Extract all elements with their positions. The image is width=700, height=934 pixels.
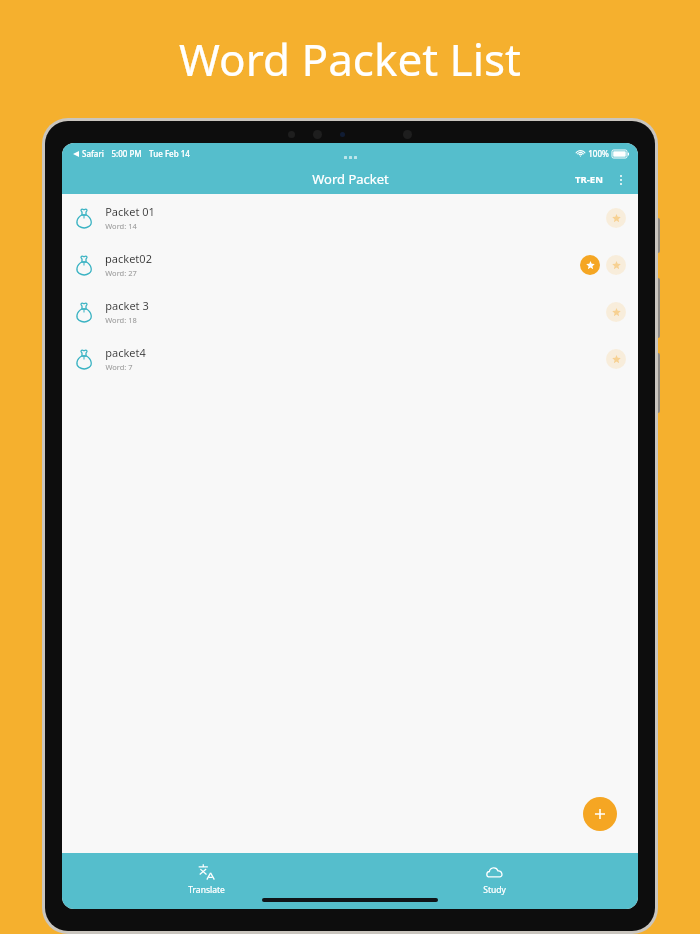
staticText: 100% xyxy=(588,148,609,159)
button[interactable]: Add word packet xyxy=(583,797,617,831)
button[interactable]: Favorite xyxy=(606,255,626,275)
button[interactable]: packet4 xyxy=(62,335,638,382)
staticText: Study xyxy=(483,884,506,896)
staticText: Word Packet List xyxy=(179,29,521,89)
button[interactable]: Favorite selected xyxy=(580,255,600,275)
staticText: Word: 7 xyxy=(105,362,133,372)
button[interactable]: Translate xyxy=(62,860,350,900)
staticText: Word: 18 xyxy=(105,315,137,325)
button[interactable]: Favorite xyxy=(606,349,626,369)
button[interactable]: packet02 xyxy=(62,241,638,288)
staticText: Translate xyxy=(188,884,225,896)
button[interactable]: Favorite xyxy=(606,208,626,228)
staticText: Safari xyxy=(82,148,104,159)
button[interactable]: TR-EN xyxy=(572,170,606,189)
staticText: TR-EN xyxy=(575,173,603,186)
button[interactable]: More options xyxy=(612,171,630,189)
staticText: Packet 01 xyxy=(105,204,155,219)
staticText: packet02 xyxy=(105,251,152,266)
staticText: 5:00 PM xyxy=(111,148,142,159)
button[interactable]: Study xyxy=(350,860,638,900)
button[interactable]: Packet 01 xyxy=(62,194,638,241)
staticText: Word: 27 xyxy=(105,268,137,278)
staticText: Tue Feb 14 xyxy=(149,148,190,159)
staticText: Word: 14 xyxy=(105,221,137,231)
staticText: packet 3 xyxy=(105,298,149,313)
button[interactable]: Favorite xyxy=(606,302,626,322)
staticText: Word Packet xyxy=(312,170,389,188)
staticText: packet4 xyxy=(105,345,146,360)
button[interactable]: packet 3 xyxy=(62,288,638,335)
